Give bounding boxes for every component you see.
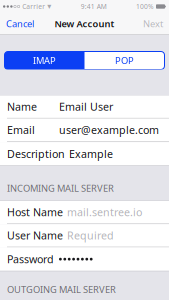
staticText: ▼	[47, 3, 51, 10]
button[interactable]: POP	[84, 51, 164, 69]
staticText: Name	[7, 100, 37, 114]
staticText: mail.sentree.io	[67, 205, 142, 219]
staticText: 9:41 AM	[81, 2, 107, 11]
staticText: POP	[115, 54, 134, 67]
staticText: Example	[69, 147, 113, 161]
staticText: Email	[7, 123, 35, 137]
staticText: Email User	[59, 100, 113, 114]
staticText: user@example.com	[59, 123, 159, 137]
staticText: User Name	[7, 228, 63, 242]
button[interactable]: Cancel	[0, 13, 34, 34]
button[interactable]: Description	[0, 142, 169, 165]
button[interactable]: Next	[143, 13, 169, 34]
staticText: Description	[7, 147, 65, 161]
button[interactable]: Password	[0, 247, 169, 271]
button[interactable]: User Name	[0, 224, 169, 247]
staticText: 100%	[136, 2, 154, 11]
staticText: Required	[67, 228, 114, 242]
staticText: Cancel	[6, 18, 34, 30]
staticText: OUTGOING MAIL SERVER	[7, 283, 116, 296]
button[interactable]: IMAP	[4, 51, 84, 69]
staticText: Next	[143, 18, 163, 30]
button[interactable]: Name	[0, 95, 169, 119]
staticText: New Account	[54, 18, 114, 30]
staticText: Password	[7, 252, 54, 266]
staticText: INCOMING MAIL SERVER	[7, 182, 114, 194]
staticText: Host Name	[7, 205, 63, 219]
staticText: IMAP	[33, 54, 56, 67]
button[interactable]: Host Name	[0, 201, 169, 224]
button[interactable]: Email	[0, 119, 169, 142]
staticText: Carrier	[22, 2, 45, 11]
